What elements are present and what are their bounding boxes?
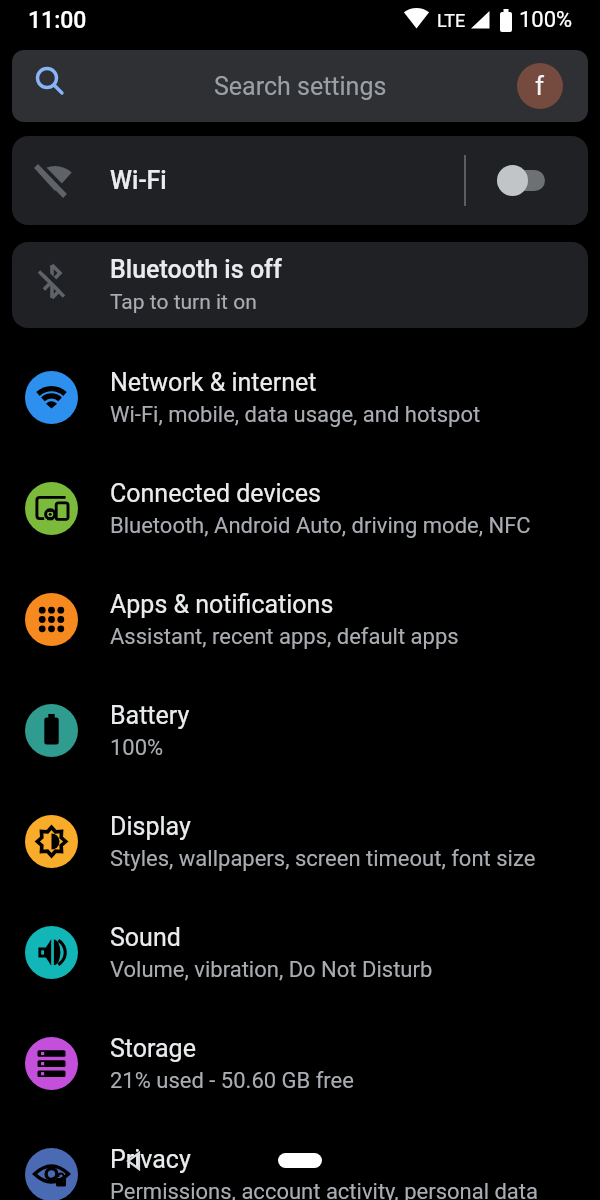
staticText: Wi-Fi <box>110 166 167 195</box>
staticText: Display <box>110 812 191 841</box>
staticText: Volume, vibration, Do Not Disturb <box>110 957 433 983</box>
button[interactable]: Apps & notifications <box>0 564 600 675</box>
button[interactable]: Privacy <box>0 1119 600 1200</box>
staticText: 100% <box>110 735 164 761</box>
button[interactable]: Bluetooth is off <box>12 242 588 328</box>
staticText: Storage <box>110 1034 196 1063</box>
staticText: Connected devices <box>110 479 321 508</box>
staticText: f <box>535 71 545 101</box>
staticText: Bluetooth is off <box>110 255 282 284</box>
staticText: Search settings <box>214 72 387 101</box>
staticText: Battery <box>110 701 190 730</box>
staticText: Tap to turn it on <box>110 290 257 315</box>
staticText: Apps & notifications <box>110 590 334 619</box>
button[interactable]: Search settings <box>12 50 588 122</box>
staticText: Wi-Fi, mobile, data usage, and hotspot <box>110 402 481 428</box>
button[interactable]: Connected devices <box>0 453 600 564</box>
staticText: Permissions, account activity, personal … <box>110 1179 538 1200</box>
staticText: Styles, wallpapers, screen timeout, font… <box>110 846 536 872</box>
staticText: Assistant, recent apps, default apps <box>110 624 459 650</box>
staticText: 100% <box>519 7 573 33</box>
staticText: Bluetooth, Android Auto, driving mode, N… <box>110 513 531 539</box>
button[interactable] <box>497 170 545 191</box>
button[interactable]: Display <box>0 786 600 897</box>
staticText: LTE <box>437 10 466 31</box>
button[interactable]: Sound <box>0 897 600 1008</box>
staticText: 21% used - 50.60 GB free <box>110 1068 354 1094</box>
button[interactable]: Battery <box>0 675 600 786</box>
staticText: 11:00 <box>28 7 87 34</box>
button[interactable] <box>278 1153 322 1168</box>
button[interactable]: Network & internet <box>0 342 600 453</box>
button[interactable]: Storage <box>0 1008 600 1119</box>
button[interactable]: Wi-Fi <box>12 136 588 225</box>
staticText: Sound <box>110 923 181 952</box>
staticText: Privacy <box>110 1145 191 1174</box>
staticText: Network & internet <box>110 368 317 397</box>
